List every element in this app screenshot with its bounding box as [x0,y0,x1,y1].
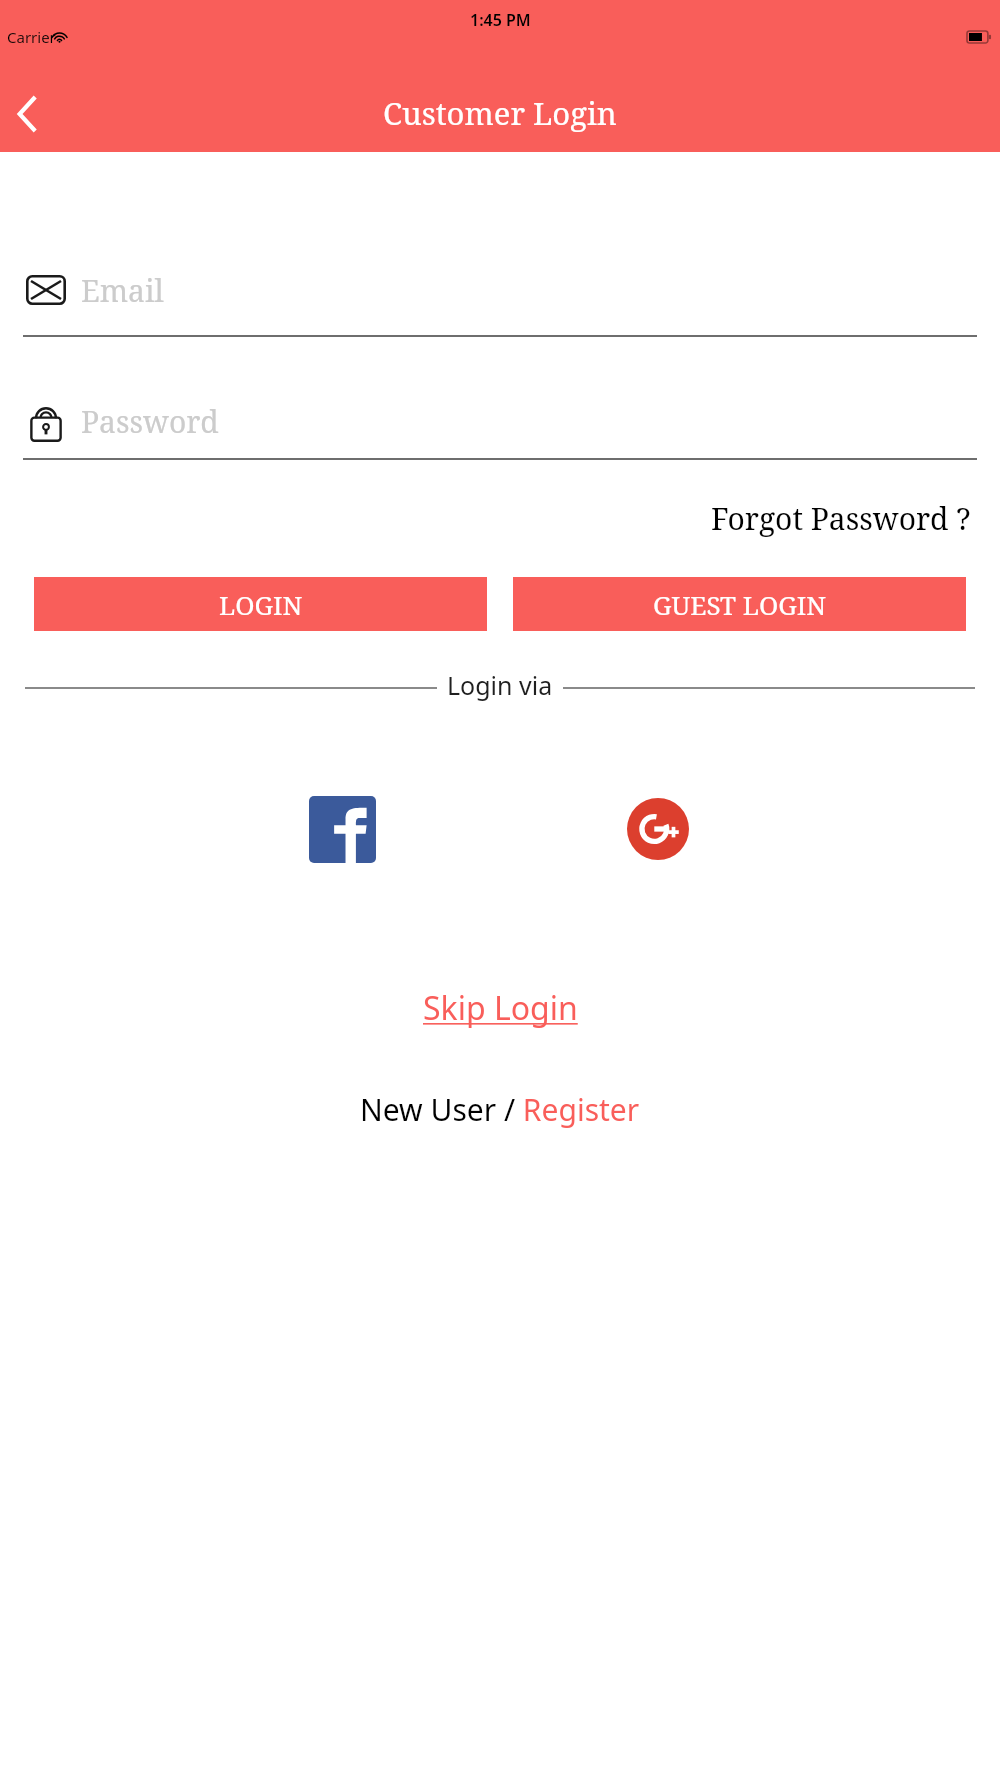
button[interactable]: Back [0,86,56,142]
button[interactable]: Email [23,267,977,337]
staticText: LOGIN [219,587,303,622]
button[interactable]: GUEST LOGIN [513,577,966,631]
button[interactable]: LOGIN [34,577,487,631]
staticText: Password [81,401,219,442]
button[interactable]: New User / Register [344,1083,656,1136]
button[interactable]: Password [23,398,977,460]
button[interactable]: Forgot Password ? [705,492,977,545]
staticText: Skip Login [423,986,578,1030]
staticText: Login via [447,668,553,702]
staticText: Carrier [7,27,56,47]
button[interactable]: Skip Login [407,980,594,1036]
staticText: GUEST LOGIN [653,587,827,622]
staticText: New User / Register [360,1089,640,1130]
staticText: Email [81,270,164,311]
staticText: Customer Login [383,92,617,134]
button[interactable]: Login with Facebook [306,793,378,865]
staticText: 1:45 PM [470,9,531,31]
button[interactable]: Login with Google Plus [622,793,694,865]
staticText: Forgot Password ? [711,498,971,539]
